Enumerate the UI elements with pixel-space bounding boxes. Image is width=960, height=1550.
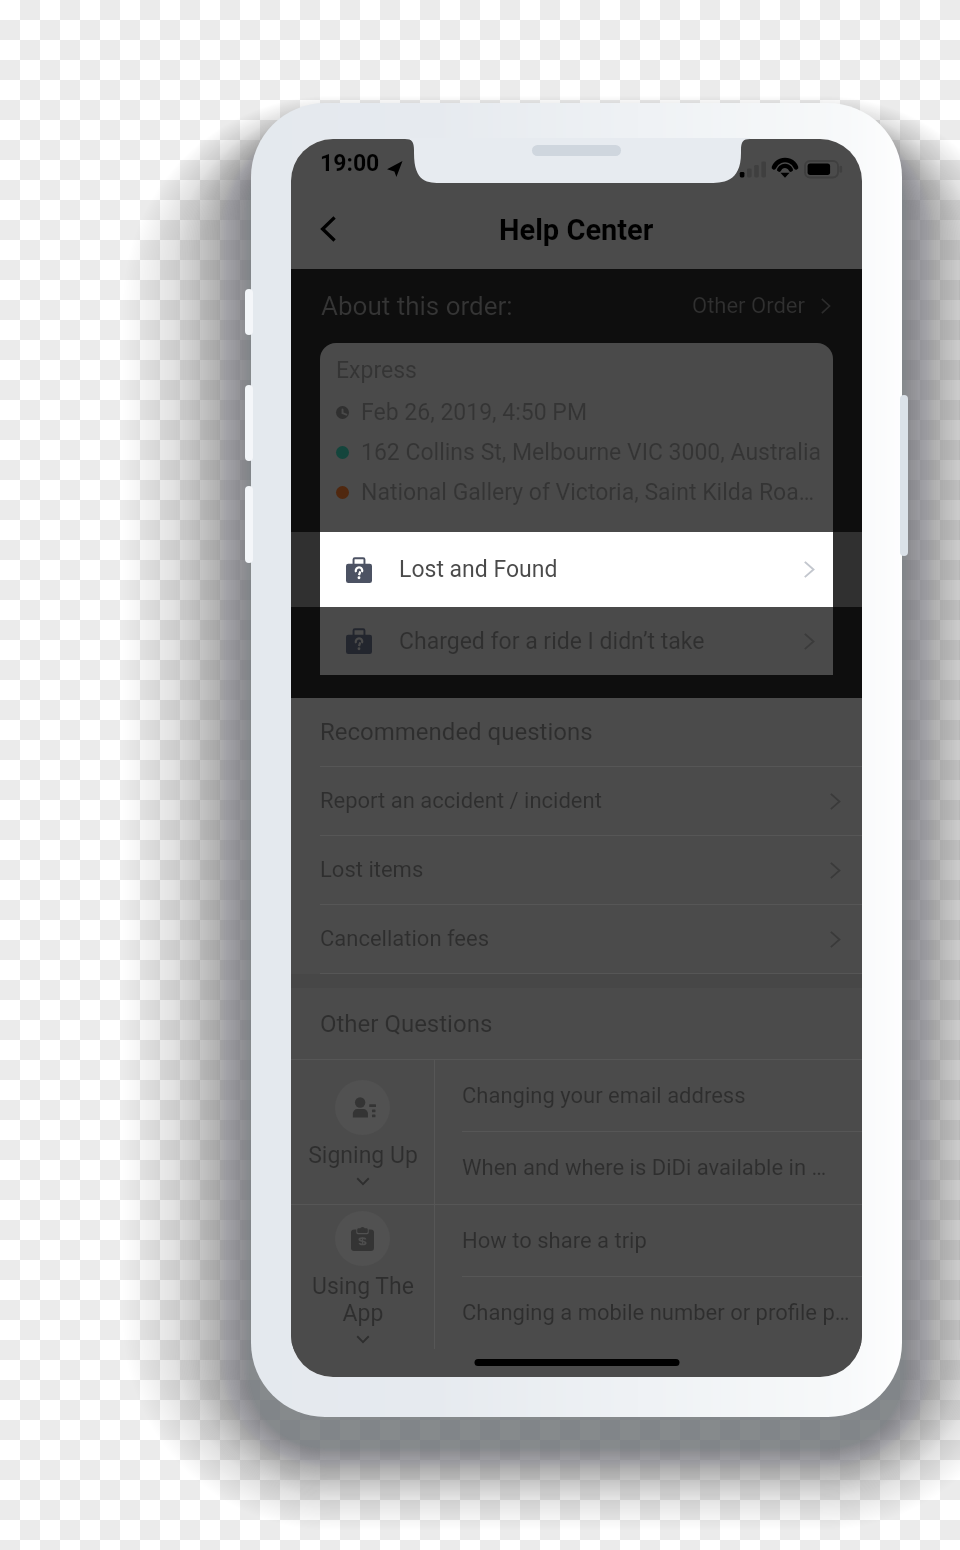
staticText: Help Center	[499, 213, 654, 247]
button[interactable]: Signing Up	[291, 1060, 434, 1204]
button[interactable]: Charged for a ride I didn’t take	[320, 607, 833, 675]
staticText: Report an accident / incident	[320, 788, 831, 814]
staticText: 19:00	[320, 150, 380, 177]
button[interactable]: Other Order	[692, 293, 830, 319]
staticText: Charged for a ride I didn’t take	[399, 628, 805, 655]
staticText: Changing a mobile number or profile p…	[462, 1300, 850, 1326]
staticText: 162 Collins St, Melbourne VIC 3000, Aust…	[361, 439, 822, 466]
staticText: National Gallery of Victoria, Saint Kild…	[361, 479, 815, 506]
staticText: Changing your email address	[462, 1083, 746, 1109]
staticText: Express	[336, 357, 417, 384]
button[interactable]: Using The App	[291, 1205, 434, 1349]
staticText: Lost and Found	[399, 556, 805, 583]
staticText: Lost items	[320, 857, 831, 883]
button[interactable]: How to share a trip	[435, 1205, 862, 1276]
button[interactable]: Changing your email address	[435, 1060, 862, 1131]
button[interactable]: Cancellation fees	[291, 905, 862, 973]
staticText: Recommended questions	[320, 718, 593, 746]
staticText: When and where is DiDi available in …	[462, 1155, 827, 1181]
button[interactable]: Changing a mobile number or profile p…	[435, 1277, 862, 1349]
button[interactable]: Back	[291, 190, 359, 269]
staticText: Other Questions	[320, 1010, 493, 1038]
staticText: About this order:	[321, 291, 692, 321]
staticText: Signing Up	[308, 1142, 418, 1169]
staticText: Feb 26, 2019, 4:50 PM	[361, 399, 587, 426]
staticText: Cancellation fees	[320, 926, 831, 952]
staticText: How to share a trip	[462, 1228, 647, 1254]
button[interactable]: When and where is DiDi available in …	[435, 1132, 862, 1204]
button[interactable]: Report an accident / incident	[291, 767, 862, 835]
staticText: Using The App	[312, 1273, 414, 1327]
staticText: Other Order	[692, 293, 805, 319]
button[interactable]: Lost and Found	[320, 532, 833, 607]
